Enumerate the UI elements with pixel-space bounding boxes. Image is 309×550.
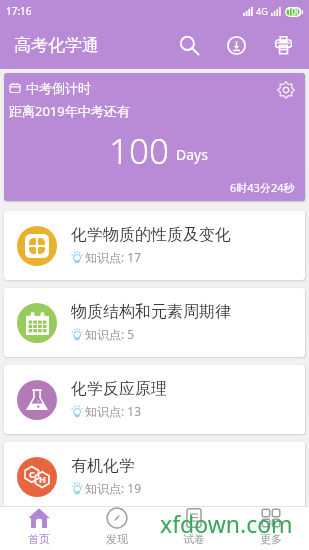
staticText: 知识点: 19 xyxy=(85,480,142,496)
staticText: 知识点: 5 xyxy=(85,326,135,342)
button[interactable]: 更多 xyxy=(232,506,309,550)
button[interactable]: C xyxy=(4,442,305,511)
button[interactable]: 中考倒计时 xyxy=(4,73,305,201)
button[interactable]: 化学物质的性质及变化 xyxy=(4,211,305,280)
staticText: 知识点: 13 xyxy=(85,403,142,419)
button[interactable]: Settings xyxy=(275,79,297,101)
button[interactable]: Download xyxy=(213,21,260,69)
staticText: 知识点: 17 xyxy=(85,249,142,265)
button[interactable]: 发现 xyxy=(78,506,155,550)
staticText: 4G xyxy=(256,5,268,17)
staticText: H xyxy=(39,473,46,485)
staticText: 物质结构和元素周期律 xyxy=(71,302,231,322)
staticText: 100 xyxy=(287,6,301,17)
staticText: 17:16 xyxy=(6,4,32,18)
staticText: xfdown.com xyxy=(160,508,293,539)
staticText: 距离2019年中考还有 xyxy=(9,102,130,120)
button[interactable]: 首页 xyxy=(0,506,78,550)
button[interactable]: 物质结构和元素周期律 xyxy=(4,288,305,357)
button[interactable]: 试卷 xyxy=(155,506,232,550)
button[interactable]: Search xyxy=(166,21,213,69)
staticText: 发现 xyxy=(106,532,128,546)
staticText: 更多 xyxy=(260,532,282,546)
staticText: 100 xyxy=(109,127,169,175)
staticText: 中考倒计时 xyxy=(26,80,91,96)
button[interactable]: 化学反应原理 xyxy=(4,365,305,434)
staticText: 化学物质的性质及变化 xyxy=(71,225,231,245)
staticText: 有机化学 xyxy=(71,456,135,476)
staticText: 6时43分24秒 xyxy=(230,180,295,195)
staticText: Days xyxy=(176,145,208,164)
staticText: 试卷 xyxy=(183,532,205,546)
button[interactable]: Print xyxy=(260,21,307,69)
staticText: 高考化学通 xyxy=(14,35,99,56)
staticText: 化学反应原理 xyxy=(71,379,167,399)
staticText: 首页 xyxy=(28,532,50,546)
staticText: C xyxy=(29,468,35,480)
